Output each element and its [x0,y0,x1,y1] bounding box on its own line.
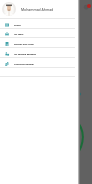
button[interactable]: My Team [0,31,78,37]
staticText: Profile [14,24,21,27]
staticText: My Team [14,33,24,36]
staticText: My Pending Requests [14,53,37,56]
button[interactable]: Mohammad Ahmad [0,0,78,18]
staticText: Concurrent Budget [14,63,34,66]
button[interactable]: Notifications [83,3,91,11]
staticText: My Team [14,33,24,36]
button[interactable]: Profile [0,22,78,28]
staticText: Profile [14,24,21,27]
staticText: Services and Action [14,43,34,46]
staticText: Concurrent Budget [14,63,34,66]
staticText: My Pending Requests [14,53,37,56]
staticText: Mohammad Ahmad [21,7,54,12]
staticText: Services and Action [14,43,34,46]
button[interactable]: Concurrent Budget [0,61,78,67]
button[interactable]: My Pending Requests [0,51,78,57]
button[interactable]: Services and Action [0,41,78,47]
